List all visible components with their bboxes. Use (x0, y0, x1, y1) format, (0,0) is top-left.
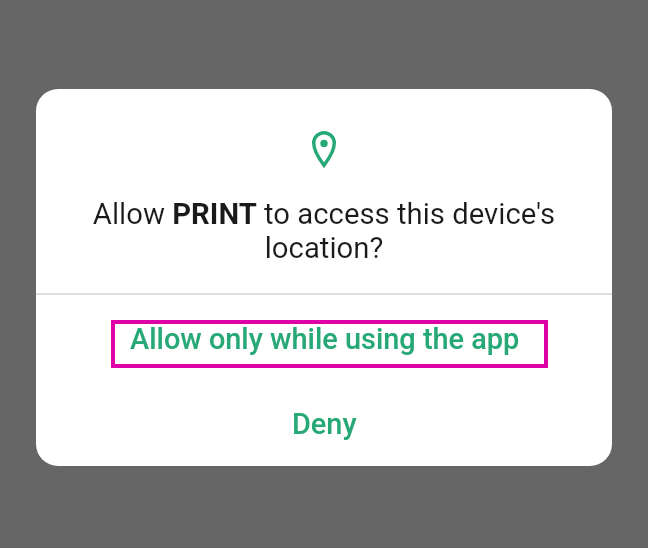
button[interactable]: Deny (106, 395, 543, 453)
staticText: Allow PRINT to access this device's loca… (52, 197, 596, 265)
button[interactable]: Allow only while using the app (111, 320, 548, 368)
staticText: Deny (292, 407, 357, 441)
other: Location (312, 131, 336, 167)
staticText: Allow only while using the app (130, 322, 520, 356)
